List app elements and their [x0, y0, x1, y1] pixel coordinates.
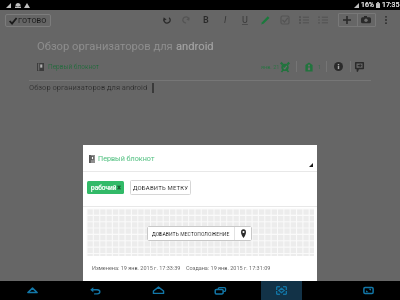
staticText: рабочий [91, 184, 117, 192]
staticText: I [224, 15, 227, 26]
button[interactable]: Screenshot [271, 281, 291, 300]
button[interactable]: Home [148, 281, 168, 300]
button[interactable]: Camera [357, 11, 375, 29]
staticText: ГОТОВО [18, 16, 47, 25]
button[interactable]: Checkbox [276, 11, 294, 29]
button[interactable]: Back [85, 281, 105, 300]
button[interactable]: Split screen [358, 281, 378, 300]
button[interactable]: Numbered list [314, 11, 332, 29]
staticText: Обзор организаторов для [37, 40, 176, 53]
button[interactable]: Up [22, 281, 42, 300]
staticText: U [242, 15, 248, 26]
button[interactable]: Redo [177, 11, 195, 29]
button[interactable]: ДОБАВИТЬ МЕСТОПОЛОЖЕНИЕ [147, 226, 252, 241]
button[interactable]: Share [355, 61, 364, 72]
button[interactable]: рабочий [87, 181, 124, 194]
staticText: Обзор организаторов для android [29, 83, 148, 92]
staticText: 16% [361, 1, 374, 9]
staticText: Первый блокнот [98, 154, 155, 162]
button[interactable]: Bulleted list [295, 11, 313, 29]
button[interactable]: More options [377, 11, 395, 29]
button[interactable]: Undo [158, 11, 176, 29]
staticText: ДОБАВИТЬ МЕТКУ [133, 184, 189, 191]
staticText: Изменена: 19 янв. 2015 г. 17:33:39 Созда… [92, 265, 271, 271]
staticText: 17:35 [382, 1, 400, 9]
button[interactable]: Italic [216, 11, 234, 29]
staticText: ДОБАВИТЬ МЕСТОПОЛОЖЕНИЕ [152, 231, 230, 237]
staticText: B [203, 15, 209, 26]
button[interactable]: ГОТОВО [5, 14, 51, 27]
button[interactable]: Reminder [281, 61, 289, 72]
button[interactable]: Recent apps [210, 281, 230, 300]
button[interactable]: Bold [197, 11, 215, 29]
staticText: янв. 21 [261, 64, 280, 70]
staticText: android [176, 40, 214, 53]
button[interactable]: Highlight [256, 11, 274, 29]
button[interactable]: Underline [236, 11, 254, 29]
button[interactable]: ДОБАВИТЬ МЕТКУ [130, 180, 191, 195]
button[interactable]: Attachments [305, 62, 313, 72]
button[interactable]: Add [338, 11, 356, 29]
staticText: 1 [318, 64, 322, 70]
staticText: Первый блокнот [48, 63, 99, 71]
button[interactable]: Info [334, 62, 343, 71]
